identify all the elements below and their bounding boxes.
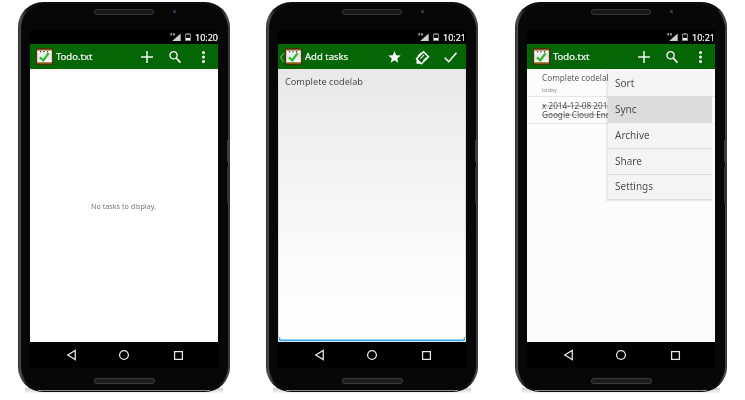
- button[interactable]: Search: [661, 46, 683, 68]
- button[interactable]: Save: [439, 46, 461, 68]
- button[interactable]: Recents: [413, 342, 439, 368]
- staticText: Archive: [615, 128, 650, 142]
- button[interactable]: Share: [608, 149, 712, 175]
- button[interactable]: Home: [359, 342, 385, 368]
- button[interactable]: Home: [608, 342, 634, 368]
- staticText: Complete codelab: [542, 72, 612, 83]
- staticText: Sync: [615, 102, 637, 116]
- button[interactable]: x 2014-12-08 2014-12-04: [527, 97, 715, 124]
- staticText: 10:21: [692, 31, 716, 43]
- staticText: Complete codelab: [285, 75, 364, 88]
- button[interactable]: Complete codelab: [278, 69, 466, 342]
- button[interactable]: Recents: [165, 342, 191, 368]
- staticText: Google Cloud Endpoints: [542, 109, 635, 120]
- staticText: 10:20: [195, 31, 219, 43]
- button[interactable]: Edit: [411, 46, 433, 68]
- button[interactable]: Recents: [662, 342, 688, 368]
- button[interactable]: Back: [306, 342, 332, 368]
- button[interactable]: Back: [58, 342, 84, 368]
- button[interactable]: Priority: [383, 46, 405, 68]
- button[interactable]: Add task: [136, 46, 158, 68]
- button[interactable]: Complete codelab: [527, 69, 715, 97]
- staticText: Todo.txt: [56, 50, 93, 63]
- button[interactable]: More options: [690, 47, 710, 67]
- button[interactable]: Archive: [608, 123, 712, 149]
- staticText: No tasks to display.: [91, 201, 157, 211]
- button[interactable]: Back: [555, 342, 581, 368]
- button[interactable]: Sort: [608, 71, 712, 97]
- staticText: Settings: [615, 179, 654, 193]
- button[interactable]: Sync: [608, 97, 712, 123]
- button[interactable]: More options: [193, 47, 213, 67]
- staticText: x 2014-12-08 2014-12-04: [542, 100, 637, 111]
- staticText: 10:21: [443, 31, 467, 43]
- staticText: Sort: [615, 76, 635, 90]
- button[interactable]: Add task: [633, 46, 655, 68]
- button[interactable]: Settings: [608, 175, 712, 199]
- staticText: Add tasks: [305, 50, 349, 63]
- button[interactable]: Search: [164, 46, 186, 68]
- staticText: Share: [615, 154, 642, 168]
- button[interactable]: Navigate up: [279, 47, 285, 67]
- staticText: Todo.txt: [553, 50, 590, 63]
- button[interactable]: Home: [111, 342, 137, 368]
- staticText: today: [542, 86, 557, 94]
